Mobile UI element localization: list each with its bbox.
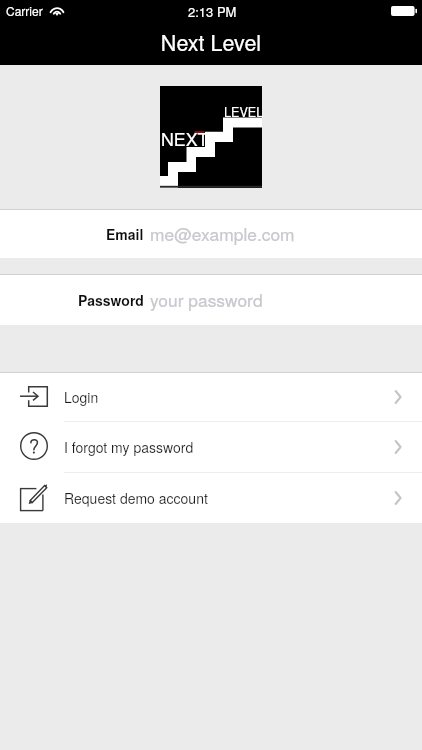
button[interactable]: Password (0, 274, 422, 325)
staticText: 2:13 PM (188, 2, 237, 21)
staticText: Next Level (0, 26, 422, 57)
other: Forgot password (20, 432, 48, 460)
staticText: Password (78, 290, 144, 310)
staticText: Request demo account (64, 488, 208, 508)
button[interactable]: Email (0, 209, 422, 258)
other: Request demo account (20, 484, 48, 511)
staticText: NEXT (161, 126, 209, 151)
staticText: Login (64, 387, 99, 407)
staticText: me@example.com (150, 221, 295, 246)
button[interactable]: Request demo account (0, 473, 422, 523)
other: Login (20, 386, 48, 407)
button[interactable]: Login (0, 373, 422, 421)
staticText: your password (150, 287, 263, 312)
button[interactable]: Forgot password (0, 422, 422, 472)
staticText: LEVEL (224, 103, 264, 121)
staticText: Carrier (6, 2, 43, 19)
staticText: I forgot my password (64, 437, 194, 457)
staticText: Email (106, 224, 144, 244)
